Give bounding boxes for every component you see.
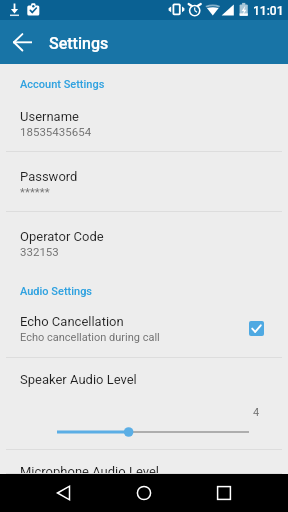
staticText: Settings bbox=[49, 34, 109, 53]
staticText: ****** bbox=[20, 185, 50, 198]
staticText: Operator Code bbox=[20, 229, 104, 244]
button[interactable]: Back bbox=[40, 474, 88, 512]
staticText: Echo cancellation during call bbox=[20, 331, 160, 344]
staticText: 332153 bbox=[20, 245, 59, 258]
button[interactable]: Password bbox=[0, 152, 288, 212]
staticText: Username bbox=[20, 109, 79, 124]
button[interactable]: Home bbox=[120, 474, 168, 512]
button[interactable]: Username bbox=[0, 92, 288, 152]
staticText: 11:01 bbox=[253, 4, 284, 18]
staticText: Speaker Audio Level bbox=[20, 372, 137, 387]
staticText: 18535435654 bbox=[20, 125, 92, 138]
staticText: Audio Settings bbox=[20, 285, 93, 298]
button[interactable]: Operator Code bbox=[0, 212, 288, 272]
staticText: Password bbox=[20, 169, 78, 184]
button[interactable]: Recent apps bbox=[200, 474, 248, 512]
staticText: Echo Cancellation bbox=[20, 314, 124, 329]
button[interactable]: Navigate up bbox=[0, 20, 44, 64]
button[interactable] bbox=[0, 422, 288, 442]
staticText: 4 bbox=[253, 406, 260, 419]
staticText: Account Settings bbox=[20, 78, 105, 91]
button[interactable]: Echo Cancellation bbox=[0, 298, 288, 358]
staticText: Microphone Audio Level bbox=[20, 464, 159, 479]
